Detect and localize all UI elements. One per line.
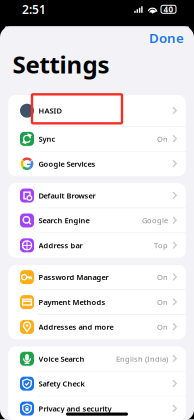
staticText: HASID <box>38 106 61 116</box>
button[interactable]: Payment Methods <box>8 290 185 314</box>
button[interactable]: Safety Check <box>8 371 185 396</box>
button[interactable]: Privacy and security <box>8 396 185 420</box>
button[interactable]: Addresses and more <box>8 315 185 339</box>
staticText: On <box>157 297 168 307</box>
button[interactable]: Sync <box>8 127 185 151</box>
staticText: Privacy and security <box>38 403 111 414</box>
button[interactable]: HASID <box>8 95 185 126</box>
staticText: On <box>157 272 168 282</box>
staticText: Address bar <box>38 240 82 250</box>
button[interactable]: Google Services <box>8 152 185 176</box>
staticText: 40 <box>163 4 173 15</box>
staticText: Google <box>142 215 168 226</box>
button[interactable]: Password Manager <box>8 265 185 289</box>
button[interactable]: Voice Search <box>8 347 185 371</box>
staticText: Voice Search <box>38 354 84 364</box>
staticText: Password Manager <box>38 272 108 282</box>
staticText: Google Services <box>38 159 95 169</box>
staticText: Default Browser <box>38 190 95 201</box>
staticText: English (India) <box>116 354 168 364</box>
staticText: Done <box>149 29 184 47</box>
staticText: Settings <box>12 48 109 80</box>
staticText: On <box>157 322 168 332</box>
button[interactable]: Default Browser <box>8 183 185 208</box>
staticText: Addresses and more <box>38 322 113 332</box>
button[interactable]: Search Engine <box>8 208 185 233</box>
staticText: Safety Check <box>38 379 84 389</box>
staticText: Search Engine <box>38 215 89 226</box>
staticText: Sync <box>38 134 55 144</box>
staticText: Top <box>154 240 168 250</box>
button[interactable]: Done <box>143 25 190 51</box>
staticText: On <box>157 134 168 144</box>
staticText: 2:51 <box>22 1 46 17</box>
staticText: Payment Methods <box>38 297 105 307</box>
button[interactable]: Address bar <box>8 233 185 257</box>
